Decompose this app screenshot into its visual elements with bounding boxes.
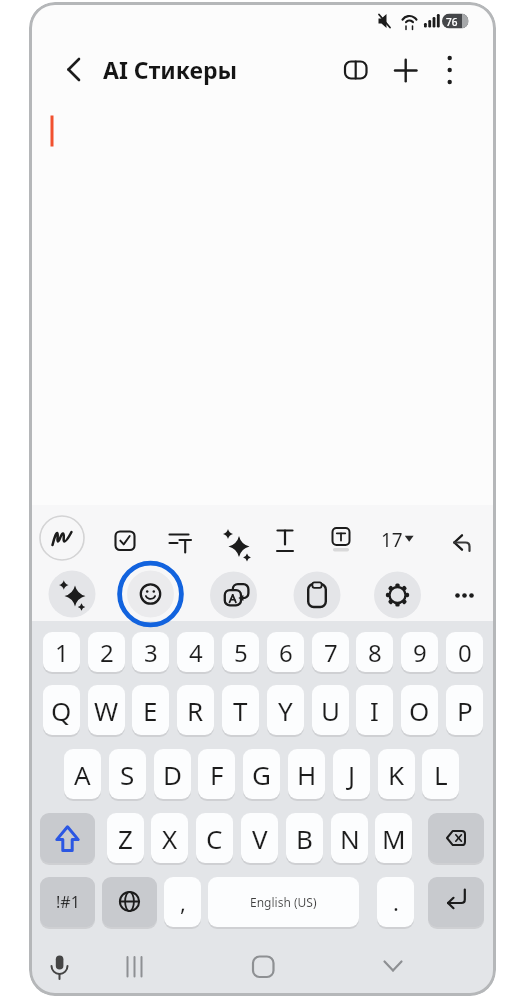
button[interactable]: [335, 49, 376, 90]
button[interactable]: [212, 517, 256, 561]
button[interactable]: [102, 877, 157, 927]
staticText: X: [162, 821, 178, 856]
staticText: V: [252, 821, 268, 856]
button[interactable]: [40, 516, 84, 560]
staticText: 9: [413, 636, 427, 669]
staticText: AI Стикеры: [103, 54, 238, 85]
button[interactable]: [428, 877, 484, 927]
staticText: Y: [278, 693, 293, 728]
button[interactable]: F: [198, 749, 235, 799]
staticText: K: [388, 757, 405, 792]
button[interactable]: !#1: [40, 877, 95, 927]
button[interactable]: R: [177, 685, 214, 735]
button[interactable]: D: [154, 749, 191, 799]
staticText: 17: [381, 527, 403, 553]
staticText: G: [252, 757, 271, 792]
staticText: O: [409, 693, 430, 728]
staticText: P: [457, 693, 473, 728]
staticText: 3: [144, 636, 158, 669]
button[interactable]: 5: [222, 632, 259, 672]
staticText: .: [393, 887, 399, 917]
staticText: J: [348, 757, 356, 792]
button[interactable]: [371, 946, 415, 990]
button[interactable]: X: [151, 813, 188, 863]
button[interactable]: I: [356, 685, 393, 735]
button[interactable]: [38, 946, 82, 990]
button[interactable]: W: [88, 685, 125, 735]
staticText: D: [163, 757, 182, 792]
button[interactable]: [40, 813, 95, 863]
button[interactable]: [112, 946, 156, 990]
staticText: 76: [446, 15, 458, 29]
staticText: 0: [458, 636, 472, 669]
button[interactable]: Y: [267, 685, 304, 735]
button[interactable]: 9: [401, 632, 438, 672]
button[interactable]: Z: [107, 813, 144, 863]
button[interactable]: [126, 570, 174, 618]
button[interactable]: 6: [267, 632, 304, 672]
button[interactable]: C: [196, 813, 233, 863]
button[interactable]: O: [401, 685, 438, 735]
staticText: H: [297, 757, 317, 792]
button[interactable]: K: [378, 749, 415, 799]
button[interactable]: .: [377, 877, 414, 927]
button[interactable]: L: [422, 749, 459, 799]
button[interactable]: 0: [446, 632, 483, 672]
button[interactable]: [428, 813, 484, 863]
button[interactable]: [385, 49, 426, 90]
button[interactable]: [439, 517, 483, 561]
button[interactable]: V: [241, 813, 278, 863]
button[interactable]: [373, 572, 421, 620]
staticText: 6: [279, 636, 293, 669]
staticText: W: [94, 693, 119, 728]
staticText: 8: [368, 636, 382, 669]
button[interactable]: ,: [164, 877, 201, 927]
button[interactable]: N: [331, 813, 368, 863]
staticText: B: [296, 821, 313, 856]
button[interactable]: M: [375, 813, 412, 863]
button[interactable]: [157, 517, 201, 561]
staticText: F: [210, 757, 224, 792]
button[interactable]: T: [222, 685, 259, 735]
button[interactable]: 2: [88, 632, 125, 672]
staticText: !#1: [56, 891, 80, 913]
button[interactable]: [293, 572, 341, 620]
button[interactable]: [53, 49, 94, 90]
button[interactable]: [374, 517, 418, 561]
button[interactable]: Q: [43, 685, 80, 735]
staticText: N: [340, 821, 360, 856]
staticText: C: [206, 821, 223, 856]
button[interactable]: P: [446, 685, 483, 735]
staticText: 5: [234, 636, 248, 669]
staticText: I: [370, 693, 379, 728]
button[interactable]: 8: [356, 632, 393, 672]
staticText: T: [233, 693, 248, 728]
button[interactable]: [319, 517, 363, 561]
staticText: M: [382, 821, 406, 856]
button[interactable]: [263, 517, 307, 561]
button[interactable]: [103, 517, 147, 561]
staticText: Q: [51, 693, 72, 728]
button[interactable]: [209, 572, 257, 620]
button[interactable]: 7: [312, 632, 349, 672]
button[interactable]: [440, 572, 488, 620]
button[interactable]: English (US): [208, 877, 359, 927]
button[interactable]: S: [109, 749, 146, 799]
button[interactable]: A: [64, 749, 101, 799]
button[interactable]: 3: [132, 632, 169, 672]
button[interactable]: [429, 49, 470, 90]
button[interactable]: 4: [177, 632, 214, 672]
button[interactable]: H: [288, 749, 325, 799]
button[interactable]: [48, 570, 96, 618]
staticText: 7: [324, 636, 338, 669]
button[interactable]: E: [132, 685, 169, 735]
button[interactable]: J: [333, 749, 370, 799]
button[interactable]: U: [312, 685, 349, 735]
button[interactable]: B: [286, 813, 323, 863]
button[interactable]: G: [243, 749, 280, 799]
button[interactable]: [241, 946, 285, 990]
staticText: ,: [180, 887, 186, 917]
staticText: English (US): [250, 894, 317, 910]
button[interactable]: 1: [43, 632, 80, 672]
staticText: E: [143, 693, 158, 728]
